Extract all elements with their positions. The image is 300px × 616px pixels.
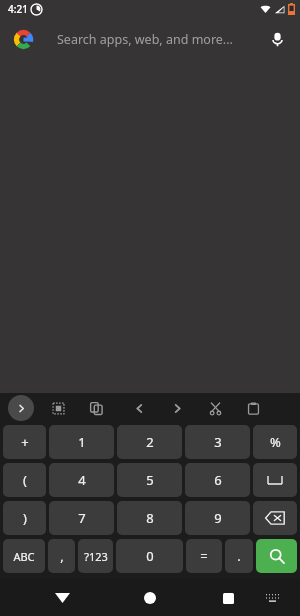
- button[interactable]: Move cursor right: [164, 395, 190, 421]
- button[interactable]: Copy: [83, 395, 109, 421]
- button[interactable]: 6: [185, 463, 250, 497]
- button[interactable]: +: [3, 425, 46, 459]
- staticText: 9: [214, 509, 222, 527]
- button[interactable]: .: [225, 539, 253, 573]
- button[interactable]: Home: [136, 584, 164, 612]
- staticText: 2: [146, 433, 154, 451]
- button[interactable]: (: [3, 463, 46, 497]
- staticText: 7: [78, 509, 86, 527]
- button[interactable]: Backspace: [253, 501, 297, 535]
- staticText: 5: [146, 471, 154, 489]
- staticText: (: [23, 471, 27, 489]
- staticText: =: [200, 547, 208, 565]
- button[interactable]: 2: [117, 425, 182, 459]
- staticText: 4:21: [8, 2, 28, 16]
- button[interactable]: Paste: [240, 395, 266, 421]
- staticText: 1: [78, 433, 86, 451]
- button[interactable]: ,: [48, 539, 75, 573]
- button[interactable]: =: [186, 539, 222, 573]
- button[interactable]: Google: [0, 18, 300, 60]
- button[interactable]: Space: [253, 463, 297, 497]
- button[interactable]: Search: [256, 539, 297, 573]
- button[interactable]: 9: [185, 501, 250, 535]
- staticText: 6: [214, 471, 222, 489]
- button[interactable]: 3: [185, 425, 250, 459]
- staticText: 4: [78, 471, 86, 489]
- button[interactable]: Cut: [202, 395, 228, 421]
- button[interactable]: 8: [117, 501, 182, 535]
- staticText: ?123: [84, 549, 108, 564]
- button[interactable]: Select all: [45, 395, 71, 421]
- button[interactable]: ): [3, 501, 46, 535]
- staticText: .: [237, 547, 241, 565]
- other: Google: [13, 29, 34, 50]
- button[interactable]: Expand toolbar: [8, 395, 34, 421]
- staticText: ,: [60, 547, 64, 565]
- button[interactable]: ABC: [3, 539, 45, 573]
- button[interactable]: 4: [49, 463, 114, 497]
- staticText: +: [21, 433, 29, 451]
- button[interactable]: Move cursor left: [126, 395, 152, 421]
- button[interactable]: Voice search: [260, 22, 294, 56]
- staticText: 8: [146, 509, 154, 527]
- staticText: Search apps, web, and more...: [57, 31, 233, 48]
- staticText: ): [23, 509, 27, 527]
- staticText: 0: [146, 547, 154, 565]
- button[interactable]: ?123: [78, 539, 113, 573]
- staticText: %: [270, 433, 281, 451]
- staticText: ABC: [13, 549, 35, 564]
- button[interactable]: Recent apps: [214, 584, 242, 612]
- button[interactable]: 7: [49, 501, 114, 535]
- button[interactable]: Change keyboard: [260, 586, 284, 610]
- button[interactable]: 5: [117, 463, 182, 497]
- button[interactable]: Back: [48, 584, 76, 612]
- staticText: 3: [214, 433, 222, 451]
- button[interactable]: 0: [116, 539, 183, 573]
- button[interactable]: %: [253, 425, 297, 459]
- button[interactable]: 1: [49, 425, 114, 459]
